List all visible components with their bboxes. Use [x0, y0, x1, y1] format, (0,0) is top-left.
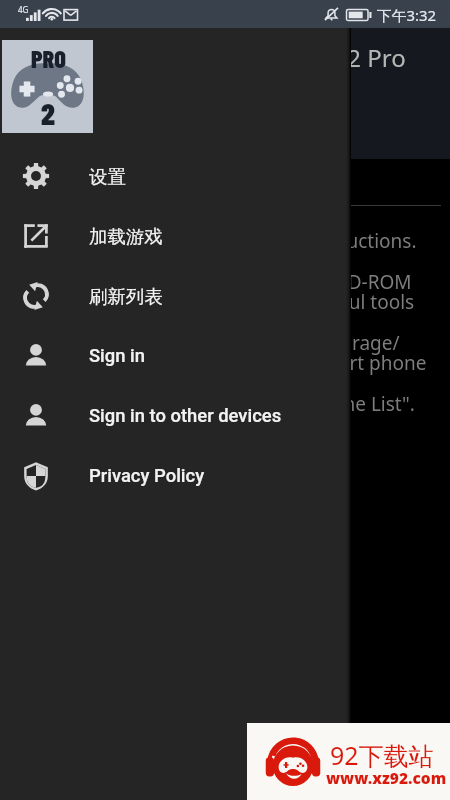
staticText: USB to smart phone — [247, 350, 427, 376]
staticText: www.xz92.com — [326, 767, 447, 788]
other: Sign in — [20, 340, 52, 372]
staticText: 2. Install the CD-ROM — [221, 269, 412, 295]
staticText: 2 — [41, 95, 55, 131]
staticText: 1. Read the instructions. — [201, 228, 417, 254]
staticText: Game Controller 2 Pro — [155, 41, 406, 74]
staticText: 刷新列表 — [89, 285, 163, 308]
staticText: 3. Connect storage/ — [225, 330, 400, 356]
button[interactable]: Load game — [0, 206, 347, 266]
staticText: with the useful tools — [233, 289, 415, 315]
staticText: 下午3:32 — [377, 5, 436, 25]
button[interactable]: Sign in — [0, 386, 347, 446]
staticText: 4G — [18, 4, 29, 15]
staticText: 设置 — [89, 165, 126, 188]
other: Settings — [20, 160, 52, 192]
other: Privacy Policy — [20, 460, 52, 492]
button[interactable]: Refresh list — [0, 266, 347, 326]
button[interactable]: Privacy Policy — [0, 446, 347, 506]
other: Refresh list — [20, 280, 52, 312]
other: Load game — [20, 220, 52, 252]
button[interactable]: Settings — [0, 146, 347, 206]
staticText: 92下载站 — [330, 738, 434, 772]
button[interactable]: Sign in — [0, 326, 347, 386]
staticText: 加载游戏 — [89, 225, 163, 248]
staticText: Privacy Policy — [89, 465, 205, 487]
staticText: Sign in — [89, 345, 145, 367]
staticText: PRO — [31, 44, 66, 73]
staticText: 4. Tap "Game List". — [248, 391, 415, 417]
staticText: Sign in to other devices — [89, 405, 282, 427]
other: Sign in — [20, 400, 52, 432]
